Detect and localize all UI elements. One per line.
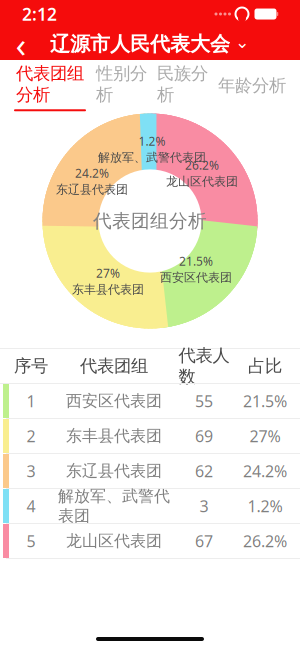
staticText: 27% (249, 425, 280, 447)
staticText: 24.2% (75, 165, 109, 181)
staticText: 67 (195, 530, 213, 552)
staticText: 代表团组分析 (16, 63, 84, 105)
staticText: 26.2% (185, 157, 219, 173)
button[interactable]: 性别分析 (96, 60, 147, 102)
staticText: 解放军、武警代表团 (98, 150, 206, 165)
staticText: ⌄ (235, 32, 250, 52)
staticText: 东辽县代表团 (56, 182, 128, 197)
staticText: 东丰县代表团 (66, 426, 162, 446)
staticText: 解放军、武警代表团 (58, 486, 170, 526)
staticText: 1 (26, 390, 35, 412)
staticText: 序号 (14, 355, 48, 377)
staticText: 2:12 (22, 2, 57, 25)
button[interactable]: 5 (0, 524, 300, 559)
button[interactable]: 年龄分析 (218, 60, 286, 102)
staticText: 1.2% (138, 133, 165, 149)
staticText: 代表团组 (80, 355, 148, 377)
staticText: 27% (96, 265, 120, 281)
staticText: 龙山区代表团 (66, 531, 162, 551)
button[interactable]: 1 (0, 384, 300, 419)
staticText: 年龄分析 (218, 75, 286, 96)
staticText: 东辽县代表团 (66, 461, 162, 481)
button[interactable]: 2 (0, 419, 300, 454)
staticText: 3 (26, 460, 35, 482)
staticText: 占比 (248, 355, 282, 377)
button[interactable]: 4 (0, 489, 300, 524)
staticText: 龙山区代表团 (166, 174, 238, 189)
staticText: 代表团组分析 (93, 209, 207, 232)
staticText: 民族分析 (157, 63, 208, 105)
staticText: 2 (26, 425, 35, 447)
button[interactable]: 民族分析 (157, 60, 208, 102)
button[interactable]: 代表团组分析 (14, 60, 86, 102)
staticText: 21.5% (243, 390, 287, 412)
staticText: 55 (195, 390, 213, 412)
staticText: 69 (195, 425, 213, 447)
staticText: 4 (26, 495, 35, 517)
staticText: 24.2% (243, 460, 287, 482)
staticText: 性别分析 (96, 63, 147, 105)
staticText: 代表人数 (178, 345, 229, 387)
staticText: 5 (26, 530, 35, 552)
button[interactable]: Back (0, 28, 42, 60)
staticText: 1.2% (247, 495, 282, 517)
staticText: 3 (199, 495, 208, 517)
staticText: 东丰县代表团 (72, 282, 144, 297)
staticText: ‹ (15, 21, 26, 67)
staticText: 辽源市人民代表大会 (50, 32, 230, 56)
button[interactable]: 3 (0, 454, 300, 489)
staticText: 26.2% (243, 530, 287, 552)
staticText: 21.5% (179, 253, 213, 269)
staticText: 西安区代表团 (66, 391, 162, 411)
staticText: 西安区代表团 (160, 270, 232, 285)
staticText: 62 (195, 460, 213, 482)
